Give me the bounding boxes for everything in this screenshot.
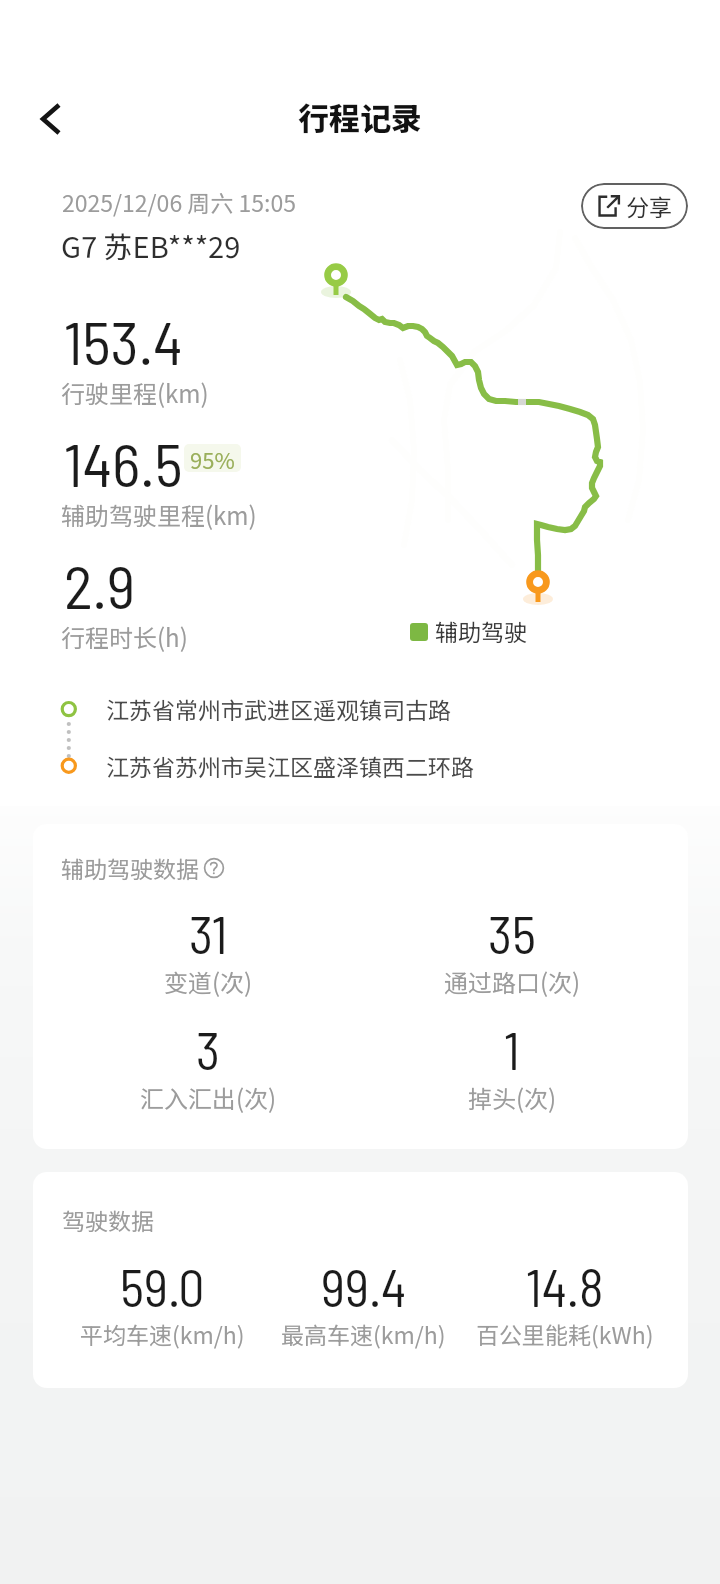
- staticText: 3: [196, 1018, 221, 1080]
- staticText: 最高车速(km/h): [281, 1317, 446, 1350]
- staticText: 153.4: [64, 304, 183, 377]
- staticText: 江苏省常州市武进区遥观镇司古路: [106, 692, 451, 725]
- staticText: 驾驶数据: [62, 1203, 154, 1236]
- staticText: 辅助驾驶数据: [61, 851, 199, 884]
- staticText: 平均车速(km/h): [80, 1317, 245, 1350]
- staticText: 掉头(次): [468, 1080, 557, 1115]
- staticText: 行程时长(h): [61, 619, 188, 654]
- staticText: 2.9: [64, 548, 136, 621]
- staticText: 59.0: [120, 1255, 205, 1317]
- staticText: 2025/12/06 周六 15:05: [62, 185, 296, 218]
- staticText: 31: [189, 902, 228, 964]
- staticText: 99.4: [321, 1255, 407, 1317]
- staticText: 变道(次): [164, 964, 253, 999]
- staticText: 百公里能耗(kWh): [476, 1317, 654, 1350]
- staticText: 行驶里程(km): [61, 375, 209, 410]
- staticText: 辅助驾驶里程(km): [61, 497, 257, 532]
- staticText: 分享: [626, 189, 672, 222]
- button[interactable]: 分享: [581, 183, 688, 229]
- button[interactable]: Help about assisted driving data: [203, 857, 225, 879]
- staticText: 江苏省苏州市吴江区盛泽镇西二环路: [106, 749, 474, 782]
- staticText: 146.5: [64, 426, 183, 499]
- staticText: 汇入汇出(次): [140, 1080, 277, 1115]
- staticText: 35: [488, 902, 536, 964]
- staticText: 1: [504, 1018, 520, 1080]
- button[interactable]: Back: [27, 93, 77, 145]
- staticText: 14.8: [526, 1255, 604, 1317]
- staticText: G7 苏EB***29: [61, 224, 241, 266]
- staticText: 辅助驾驶: [435, 614, 527, 647]
- staticText: 通过路口(次): [444, 964, 581, 999]
- staticText: 95%: [190, 444, 235, 471]
- staticText: 行程记录: [0, 94, 720, 139]
